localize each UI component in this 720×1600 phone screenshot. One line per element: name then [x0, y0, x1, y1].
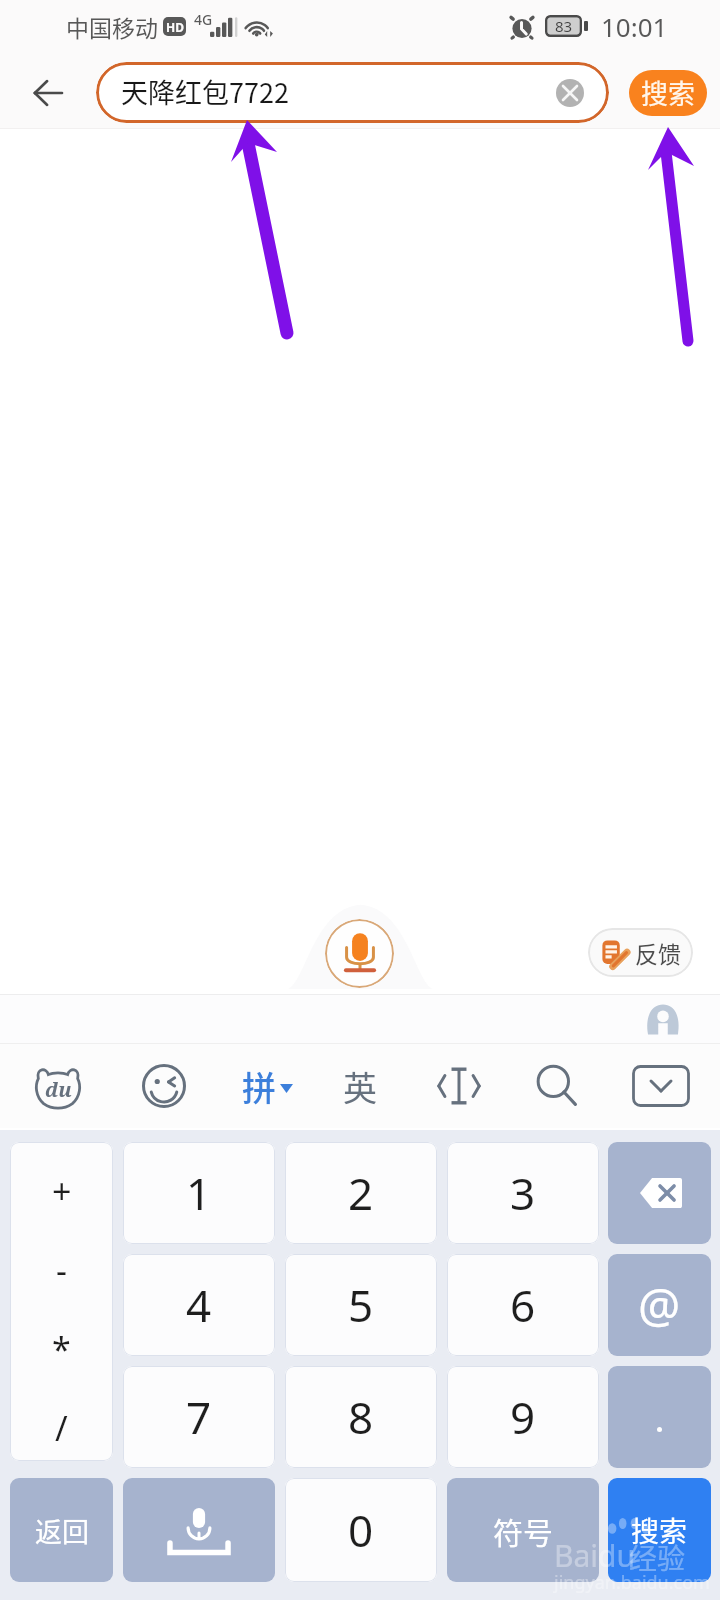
staticText: HD	[166, 19, 184, 35]
button[interactable]: Hide keyboard	[613, 1044, 709, 1128]
staticText: 返回	[35, 1511, 89, 1550]
staticText: 83	[555, 16, 573, 36]
button[interactable]: 5	[285, 1254, 437, 1356]
staticText: du	[45, 1076, 72, 1103]
staticText: 天降红包7722	[121, 72, 289, 111]
staticText: +	[52, 1168, 72, 1204]
button[interactable]: 符号	[447, 1478, 599, 1582]
staticText: /	[55, 1405, 68, 1441]
staticText: 6	[510, 1275, 536, 1335]
staticText: 符号	[493, 1509, 553, 1552]
staticText: 经验	[629, 1537, 686, 1578]
button[interactable]: 英	[310, 1044, 410, 1128]
button[interactable]: 1	[123, 1142, 275, 1244]
button[interactable]: 搜索	[608, 1478, 711, 1582]
staticText: 英	[343, 1062, 377, 1111]
button[interactable]: Period	[608, 1366, 711, 1468]
staticText: 0	[348, 1500, 374, 1560]
staticText: 搜索	[641, 73, 695, 112]
staticText: @	[638, 1273, 681, 1337]
button[interactable]: Voice search	[325, 919, 394, 988]
button[interactable]: 返回	[10, 1478, 113, 1582]
staticText: 反馈	[635, 936, 681, 969]
staticText: 1	[186, 1163, 212, 1223]
button[interactable]: 拼	[217, 1044, 317, 1128]
staticText: 5	[348, 1275, 374, 1335]
staticText: Baidu	[554, 1535, 636, 1576]
staticText: 7	[186, 1387, 212, 1447]
staticText: jingyan.baidu.com	[554, 1570, 710, 1595]
staticText: *	[52, 1326, 71, 1362]
button[interactable]: Cursor move	[411, 1044, 507, 1128]
button[interactable]: Voice input	[123, 1478, 275, 1582]
button[interactable]: Clear text	[556, 79, 584, 107]
staticText: 9	[510, 1387, 536, 1447]
button[interactable]: Operators	[10, 1142, 113, 1461]
staticText: 2	[348, 1163, 374, 1223]
button[interactable]: 6	[447, 1254, 599, 1356]
button[interactable]: 天降红包7722	[96, 62, 609, 123]
staticText: 搜索	[631, 1510, 688, 1551]
button[interactable]: 7	[123, 1366, 275, 1468]
button[interactable]: Baidu input	[10, 1044, 106, 1128]
staticText: -	[56, 1247, 67, 1283]
button[interactable]: 0	[285, 1478, 437, 1582]
staticText: 拼	[242, 1062, 276, 1111]
button[interactable]: 8	[285, 1366, 437, 1468]
staticText: 8	[348, 1387, 374, 1447]
button[interactable]: Search	[509, 1044, 605, 1128]
button[interactable]: 反馈	[588, 928, 693, 977]
staticText: 4G	[194, 10, 213, 29]
button[interactable]: At sign	[608, 1254, 711, 1356]
staticText: 3	[510, 1163, 536, 1223]
button[interactable]: 2	[285, 1142, 437, 1244]
button[interactable]: 3	[447, 1142, 599, 1244]
staticText: 10:01	[601, 9, 668, 44]
button[interactable]: 9	[447, 1366, 599, 1468]
button[interactable]: 4	[123, 1254, 275, 1356]
button[interactable]: Back	[8, 57, 88, 129]
staticText: 中国移动	[66, 10, 158, 43]
button[interactable]: Emoji	[116, 1044, 212, 1128]
button[interactable]: 搜索	[629, 70, 707, 116]
button[interactable]: Backspace	[608, 1142, 711, 1244]
staticText: 4	[186, 1275, 212, 1335]
